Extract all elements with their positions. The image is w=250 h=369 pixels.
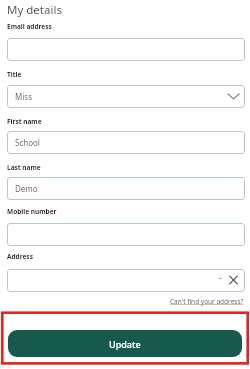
button[interactable]: Demo [7,177,245,200]
button[interactable] [7,38,245,61]
staticText: Last name [7,163,41,172]
staticText: Demo [15,183,38,194]
button[interactable]: Update [8,330,242,357]
staticText: School [15,137,40,148]
button[interactable]: School [7,131,245,154]
button[interactable] [7,269,245,292]
button[interactable]: Can't find your address? [140,295,244,307]
button[interactable] [7,223,245,246]
staticText: Email address [7,22,52,31]
staticText: Mobile number [7,207,57,216]
staticText: Update [109,338,141,350]
staticText: Title [7,70,22,79]
staticText: Can't find your address? [170,297,244,306]
staticText: First name [7,117,42,126]
button[interactable]: Miss [7,85,245,108]
staticText: Address [7,252,33,261]
staticText: Miss [15,91,32,102]
staticText: My details [7,2,62,18]
